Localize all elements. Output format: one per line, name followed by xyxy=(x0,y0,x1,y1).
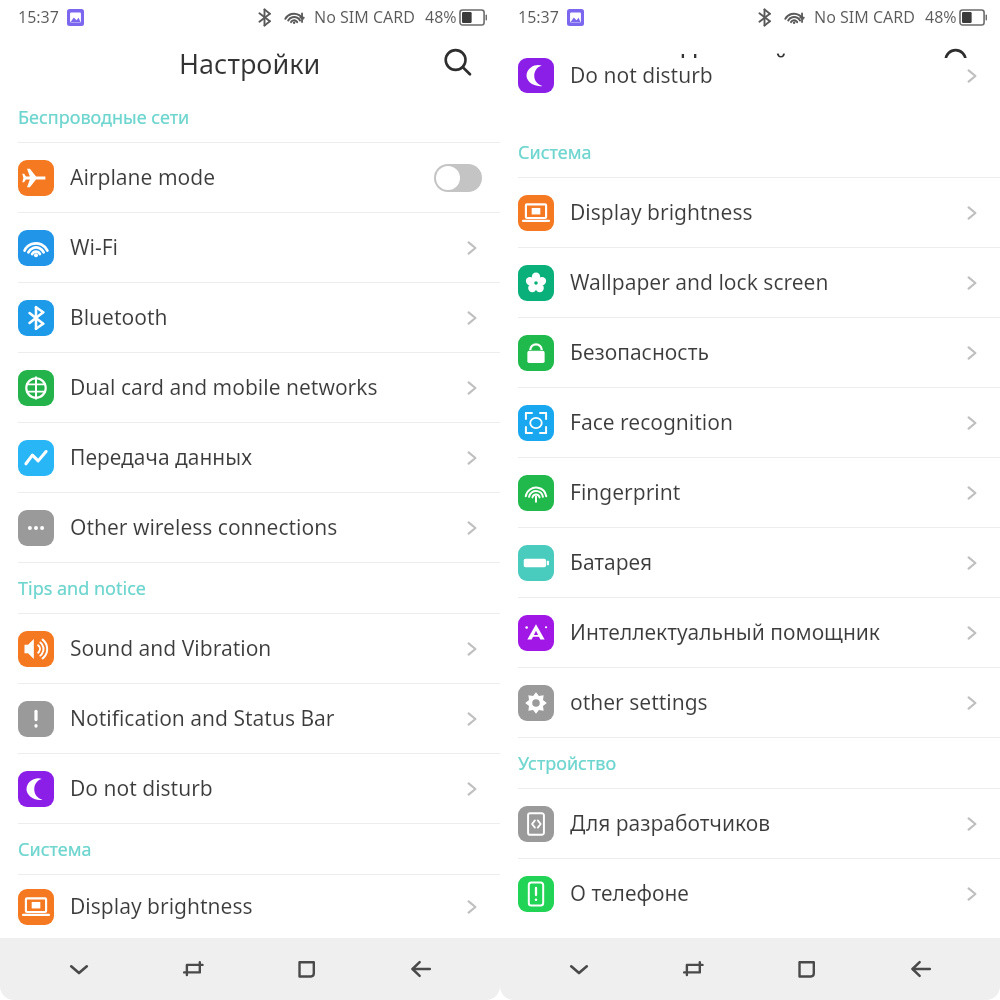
staticText: No SIM CARD xyxy=(814,6,915,28)
button[interactable]: Home xyxy=(772,938,842,1000)
button[interactable]: Display brightness xyxy=(500,178,1000,247)
staticText: Airplane mode xyxy=(70,163,216,192)
staticText: Do not disturb xyxy=(570,61,713,90)
button[interactable]: Bluetooth xyxy=(0,283,500,352)
staticText: Настройки xyxy=(179,45,321,82)
staticText: Other wireless connections xyxy=(70,513,338,542)
staticText: Система xyxy=(518,140,592,165)
staticText: Dual card and mobile networks xyxy=(70,373,378,402)
button[interactable]: other settings xyxy=(500,668,1000,737)
staticText: other settings xyxy=(570,688,708,717)
button[interactable]: Back xyxy=(386,938,456,1000)
button[interactable]: Do not disturb xyxy=(500,92,1000,127)
staticText: Устройство xyxy=(518,751,617,776)
staticText: Sound and Vibration xyxy=(70,634,272,663)
button[interactable]: Безопасность xyxy=(500,318,1000,387)
staticText: Display brightness xyxy=(70,892,253,921)
staticText: Fingerprint xyxy=(570,478,681,507)
button[interactable]: Display brightness xyxy=(0,875,500,938)
staticText: Батарея xyxy=(570,548,653,577)
staticText: 15:37 xyxy=(518,6,559,28)
button[interactable]: Expand xyxy=(44,938,114,1000)
staticText: Display brightness xyxy=(570,198,753,227)
staticText: Настройки xyxy=(679,45,821,82)
staticText: Передача данных xyxy=(70,443,252,472)
button[interactable]: Home xyxy=(272,938,342,1000)
staticText: Notification and Status Bar xyxy=(70,704,335,733)
button[interactable]: Search xyxy=(936,41,980,85)
button[interactable]: Dual card and mobile networks xyxy=(0,353,500,422)
button[interactable]: Батарея xyxy=(500,528,1000,597)
staticText: Do not disturb xyxy=(70,774,213,803)
staticText: Интеллектуальный помощник xyxy=(570,618,881,647)
button[interactable]: Fingerprint xyxy=(500,458,1000,527)
staticText: 15:37 xyxy=(18,6,59,28)
button[interactable]: Интеллектуальный помощник xyxy=(500,598,1000,667)
button[interactable]: Switch xyxy=(658,938,728,1000)
staticText: Wallpaper and lock screen xyxy=(570,268,829,297)
button[interactable]: Other wireless connections xyxy=(0,493,500,562)
button[interactable]: Wallpaper and lock screen xyxy=(500,248,1000,317)
button[interactable]: Search xyxy=(436,41,480,85)
staticText: Безопасность xyxy=(570,338,709,367)
staticText: Face recognition xyxy=(570,408,733,437)
staticText: No SIM CARD xyxy=(314,6,415,28)
staticText: О телефоне xyxy=(570,879,689,908)
staticText: Tips and notice xyxy=(18,576,146,601)
button[interactable]: Switch xyxy=(158,938,228,1000)
button[interactable]: Wi-Fi xyxy=(0,213,500,282)
button[interactable]: Notification and Status Bar xyxy=(0,684,500,753)
button[interactable]: О телефоне xyxy=(500,859,1000,928)
button[interactable]: Back xyxy=(886,938,956,1000)
staticText: Bluetooth xyxy=(70,303,168,332)
button[interactable]: Airplane mode xyxy=(0,143,500,212)
staticText: 48% xyxy=(925,6,957,28)
button[interactable]: Передача данных xyxy=(0,423,500,492)
button[interactable]: Для разработчиков xyxy=(500,789,1000,858)
staticText: Система xyxy=(18,837,92,862)
staticText: Для разработчиков xyxy=(570,809,771,838)
staticText: Беспроводные сети xyxy=(18,105,190,130)
button[interactable]: Expand xyxy=(544,938,614,1000)
staticText: 48% xyxy=(425,6,457,28)
staticText: Wi-Fi xyxy=(70,233,119,262)
button[interactable]: Sound and Vibration xyxy=(0,614,500,683)
button[interactable]: Face recognition xyxy=(500,388,1000,457)
button[interactable]: Do not disturb xyxy=(0,754,500,823)
